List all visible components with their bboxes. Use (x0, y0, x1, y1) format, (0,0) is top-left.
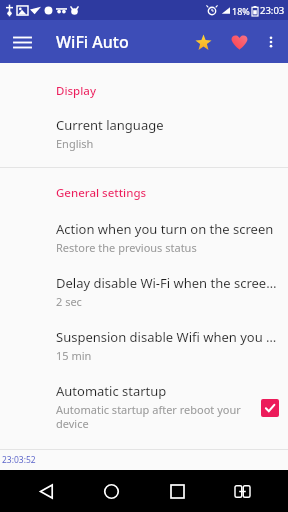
staticText: 15 min (56, 348, 92, 363)
button[interactable]: Back (26, 471, 66, 511)
button[interactable]: Favorite (221, 24, 257, 60)
staticText: Delay disable Wi-Fi when the screen t.. (56, 274, 278, 292)
staticText: 23:03:52 (2, 454, 36, 466)
button[interactable]: Screenshot (222, 471, 262, 511)
staticText: Suspension disable Wifi when you re.. (56, 328, 278, 346)
button[interactable]: More options (257, 28, 285, 56)
button[interactable]: Suspension disable Wifi when you re.. (0, 328, 288, 363)
staticText: 23:03 (260, 4, 285, 17)
staticText: Display (56, 83, 96, 99)
staticText: Automatic startup (56, 382, 167, 400)
staticText: Restore the previous status (56, 240, 197, 255)
button[interactable]: Rate app (185, 24, 221, 60)
button[interactable]: Home (91, 471, 131, 511)
button[interactable]: Recent apps (157, 471, 197, 511)
staticText: English (56, 136, 94, 151)
staticText: Automatic startup after reboot your devi… (56, 402, 253, 431)
button[interactable]: Open navigation menu (7, 27, 37, 57)
button[interactable]: Automatic startup checkbox (261, 399, 279, 417)
staticText: Action when you turn on the screen (56, 220, 274, 238)
button[interactable]: Delay disable Wi-Fi when the screen t.. (0, 274, 288, 309)
button[interactable]: Action when you turn on the screen (0, 220, 288, 255)
staticText: General settings (56, 185, 147, 201)
button[interactable]: Automatic startup (0, 382, 288, 431)
staticText: 18% (232, 5, 250, 17)
staticText: 2 sec (56, 294, 82, 309)
staticText: WiFi Auto (56, 31, 129, 53)
staticText: Current language (56, 116, 164, 134)
button[interactable]: Current language (0, 116, 288, 151)
